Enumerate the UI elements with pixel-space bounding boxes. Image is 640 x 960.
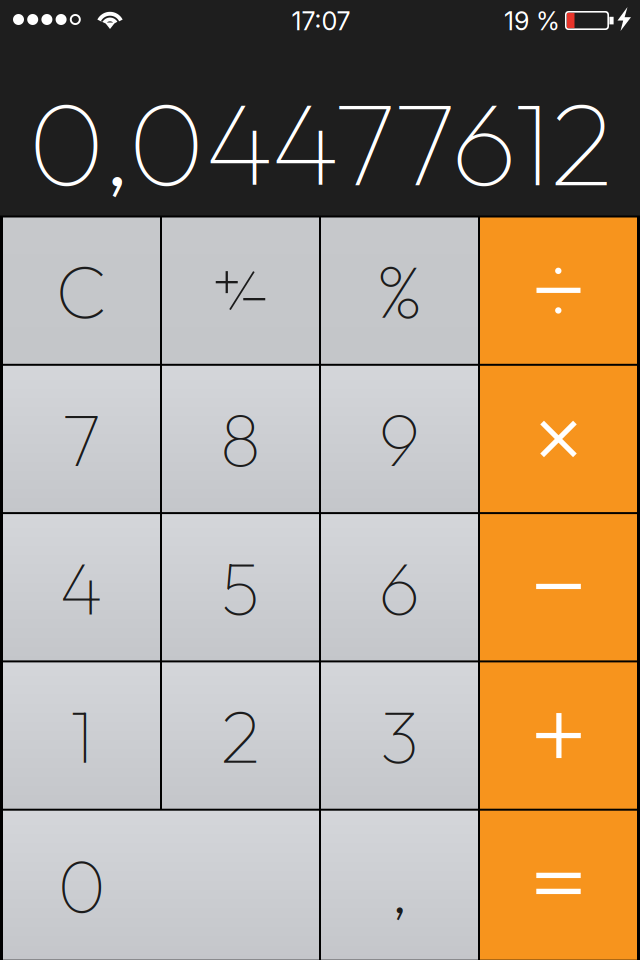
button[interactable]: Multiply [480,366,637,512]
button[interactable]: Divide [480,217,637,364]
staticText: 1 [69,689,93,782]
staticText: 8 [220,393,261,485]
button[interactable]: Percent [321,217,478,364]
button[interactable]: Plus minus [162,217,319,364]
staticText: C [55,244,107,337]
staticText: % [375,244,424,337]
staticText: 0 [57,839,105,931]
button[interactable]: Plus [480,662,637,809]
button[interactable]: 8 [162,366,319,512]
staticText: 6 [378,541,420,633]
staticText: 4 [59,541,103,633]
staticText: 9 [378,393,420,485]
button[interactable]: Equals [480,811,637,960]
button[interactable]: Decimal comma [321,811,478,960]
staticText: 2 [220,689,260,782]
staticText: 7 [62,393,101,485]
button[interactable]: 3 [321,662,478,809]
button[interactable]: 0 [3,811,319,960]
button[interactable]: 9 [321,366,478,512]
button[interactable]: Clear [3,217,160,364]
staticText: 19 % [504,6,560,36]
button[interactable]: 7 [3,366,160,512]
staticText: 0,04477612 [28,68,613,215]
button[interactable]: 5 [162,514,319,660]
staticText: 17:07 [291,6,350,36]
button[interactable]: Minus [480,514,637,660]
button[interactable]: 1 [3,662,160,809]
button[interactable]: 2 [162,662,319,809]
button[interactable]: 4 [3,514,160,660]
staticText: 3 [380,689,419,782]
staticText: , [389,839,409,931]
staticText: 5 [221,541,260,633]
button[interactable]: 6 [321,514,478,660]
